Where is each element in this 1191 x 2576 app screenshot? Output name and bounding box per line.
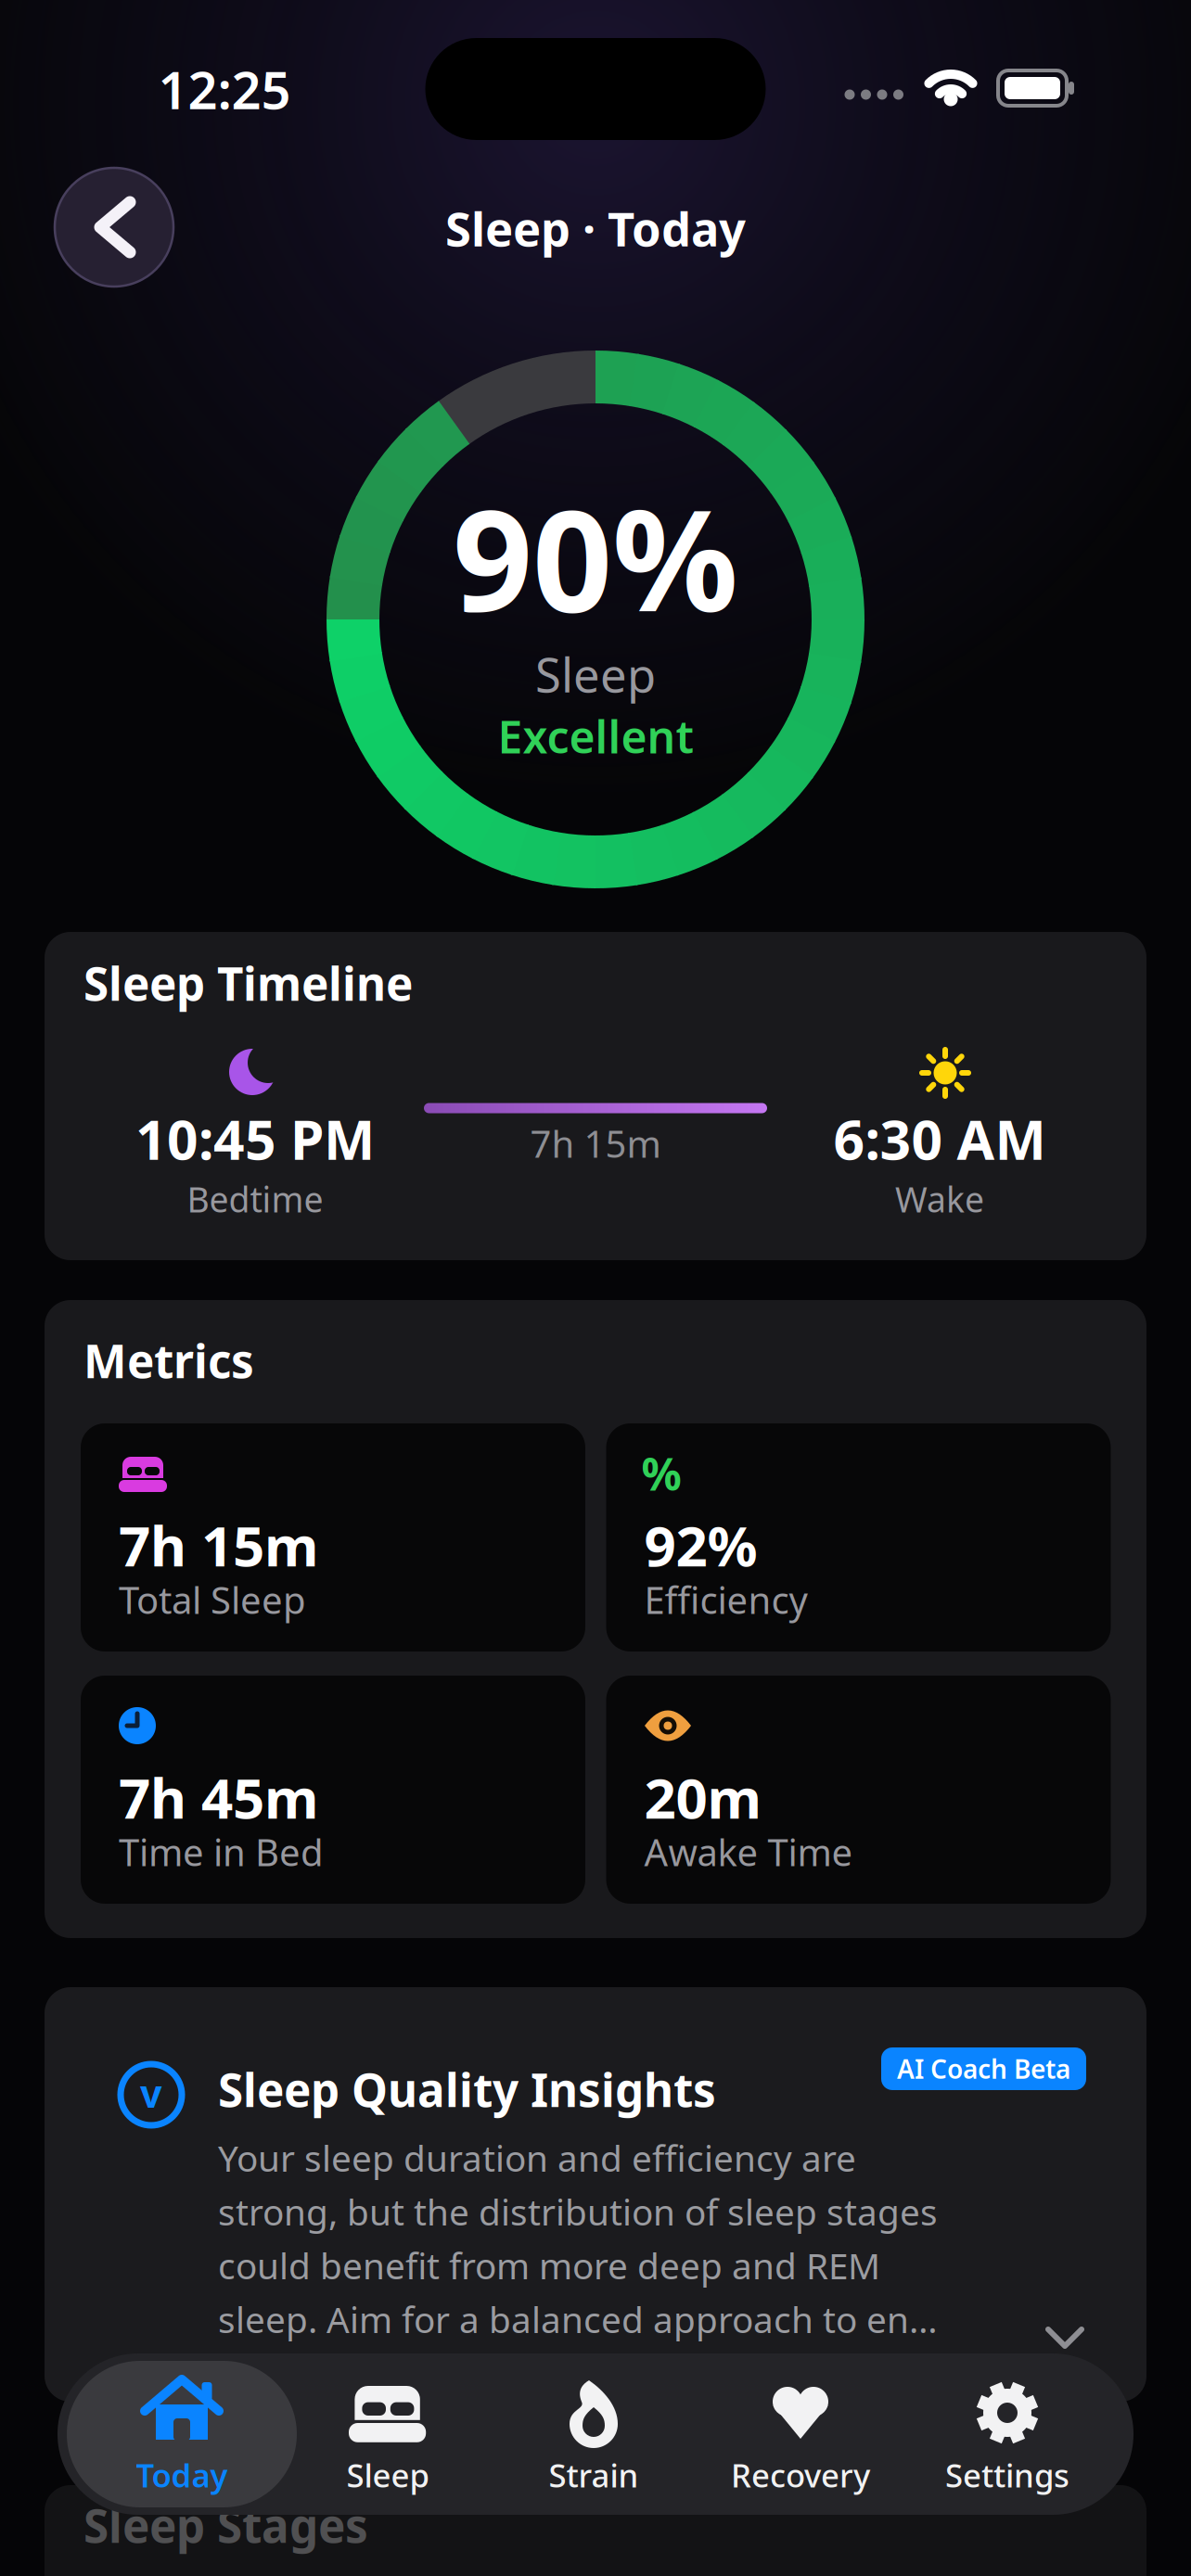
staticText: Recovery (731, 2454, 870, 2496)
staticText: AI Coach Beta (897, 2052, 1070, 2086)
button[interactable]: Sleep (290, 2361, 485, 2507)
staticText: could benefit from more deep and REM (218, 2242, 880, 2289)
staticText: Efficiency (644, 1575, 807, 1624)
staticText: strong, but the distribution of sleep st… (218, 2188, 938, 2235)
staticText: Wake (895, 1176, 984, 1222)
staticText: Total Sleep (119, 1575, 306, 1624)
staticText: Your sleep duration and efficiency are (218, 2134, 856, 2182)
staticText: 7h 15m (530, 1119, 661, 1168)
button[interactable]: Strain (496, 2361, 691, 2507)
staticText: Metrics (83, 1330, 254, 1391)
staticText: Awake Time (644, 1827, 853, 1876)
staticText: Sleep Stages (83, 2495, 368, 2555)
staticText: 10:45 PM (135, 1103, 375, 1175)
staticText: 6:30 AM (833, 1103, 1046, 1175)
staticText: % (641, 1444, 681, 1503)
staticText: 12:25 (158, 55, 291, 124)
button[interactable]: AI Coach Beta (881, 2047, 1086, 2090)
button[interactable]: Recovery (703, 2361, 898, 2507)
button[interactable]: Back (55, 168, 173, 287)
staticText: Time in Bed (119, 1827, 324, 1876)
staticText: 7h 45m (119, 1760, 319, 1834)
staticText: Strain (549, 2454, 639, 2496)
button[interactable]: Today (67, 2361, 297, 2507)
staticText: Sleep Timeline (83, 953, 413, 1013)
staticText: 20m (644, 1760, 762, 1834)
staticText: Excellent (498, 707, 693, 766)
staticText: 90% (453, 465, 738, 650)
staticText: Sleep Quality Insights (218, 2059, 716, 2119)
button[interactable]: Settings (910, 2361, 1105, 2507)
staticText: Sleep · Today (445, 197, 746, 259)
staticText: sleep. Aim for a balanced approach to en… (218, 2295, 938, 2343)
staticText: 7h 15m (119, 1508, 319, 1582)
staticText: 92% (644, 1508, 757, 1582)
staticText: Bedtime (187, 1176, 323, 1222)
staticText: Settings (945, 2454, 1069, 2496)
staticText: Sleep (535, 643, 656, 705)
staticText: v (140, 2067, 162, 2118)
button[interactable]: Expand insights (1037, 2319, 1093, 2356)
staticText: Today (136, 2454, 228, 2496)
staticText: Sleep (346, 2454, 429, 2496)
